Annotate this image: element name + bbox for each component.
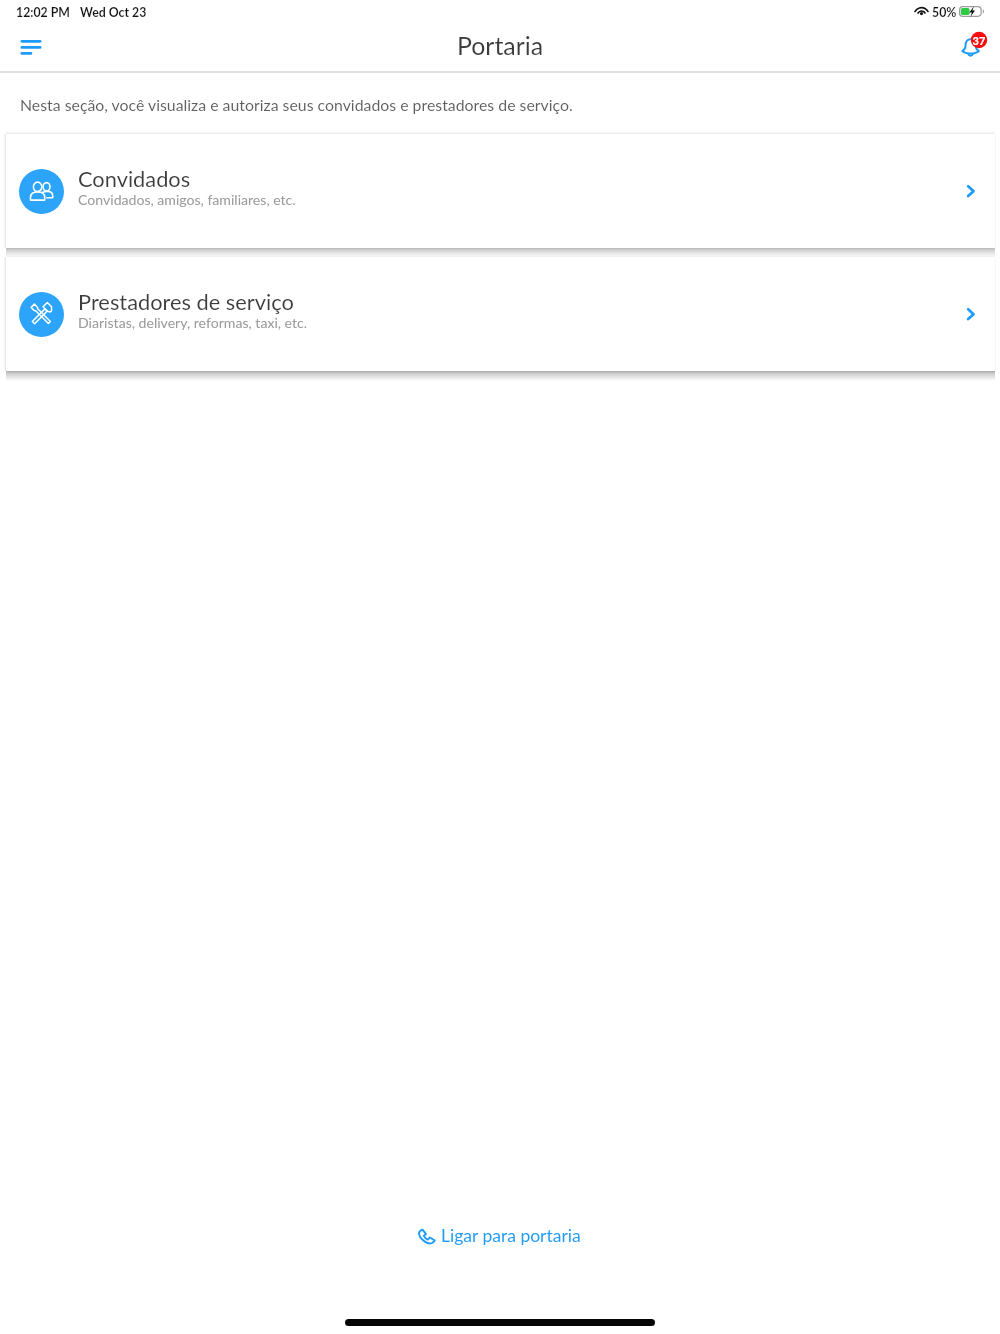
staticText: Nesta seção, você visualiza e autoriza s… [20, 95, 573, 114]
staticText: 50% [932, 5, 957, 20]
staticText: Convidados [78, 165, 191, 191]
staticText: Convidados, amigos, familiares, etc. [78, 191, 296, 208]
staticText: Wed Oct 23 [80, 5, 147, 20]
button[interactable]: Menu [8, 30, 54, 64]
button[interactable]: Convidados [6, 134, 995, 248]
button[interactable]: Prestadores de serviço [6, 257, 995, 371]
staticText: Prestadores de serviço [78, 288, 294, 314]
staticText: 37 [972, 34, 986, 47]
staticText: 12:02 PM [16, 5, 70, 20]
staticText: Ligar para portaria [441, 1225, 581, 1246]
staticText: Diaristas, delivery, reformas, taxi, etc… [78, 314, 308, 331]
staticText: Portaria [0, 30, 1000, 60]
button[interactable]: Ligar para portaria [402, 1216, 598, 1258]
button[interactable]: Notifications [948, 26, 994, 70]
